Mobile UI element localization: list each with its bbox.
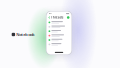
button[interactable]: Notebook: [12, 32, 34, 37]
button[interactable]: [47, 29, 71, 33]
button[interactable]: [47, 33, 71, 38]
staticText: 9:41: [49, 13, 52, 14]
button[interactable]: Back: [48, 16, 50, 19]
button[interactable]: [47, 20, 71, 25]
staticText: Notebook: [16, 32, 34, 37]
button[interactable]: [47, 42, 71, 47]
button[interactable]: [47, 38, 71, 42]
button[interactable]: [47, 25, 71, 29]
staticText: Threads: [51, 16, 63, 19]
button[interactable]: New thread: [67, 16, 69, 19]
